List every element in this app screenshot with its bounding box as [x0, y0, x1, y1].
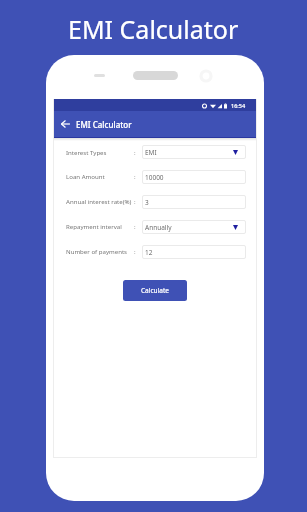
button[interactable]: Annually — [142, 220, 246, 234]
staticText: : — [134, 148, 136, 156]
staticText: EMI Calculator — [76, 119, 132, 130]
staticText: 12 — [145, 248, 153, 257]
staticText: Number of payments — [66, 247, 128, 255]
button[interactable]: 12 — [142, 245, 246, 259]
staticText: : — [134, 172, 136, 180]
button[interactable]: 3 — [142, 195, 246, 209]
staticText: Annually — [145, 223, 172, 232]
staticText: Repayment interval — [66, 222, 122, 230]
staticText: 3 — [145, 198, 149, 207]
staticText: Interest Types — [66, 148, 107, 156]
button[interactable]: EMI — [142, 145, 246, 159]
button[interactable]: Back — [54, 111, 76, 137]
staticText: 16:54 — [231, 102, 246, 109]
staticText: : — [134, 247, 136, 255]
staticText: EMI — [145, 148, 157, 157]
button[interactable]: Calculate — [123, 280, 187, 301]
staticText: Loan Amount — [66, 172, 105, 180]
button[interactable]: 10000 — [142, 170, 246, 184]
staticText: 10000 — [145, 173, 164, 182]
staticText: Calculate — [141, 286, 169, 295]
staticText: Annual interest rate(%) — [66, 197, 132, 205]
staticText: : — [134, 222, 136, 230]
staticText: : — [134, 197, 136, 205]
staticText: EMI Calculator — [68, 12, 239, 46]
